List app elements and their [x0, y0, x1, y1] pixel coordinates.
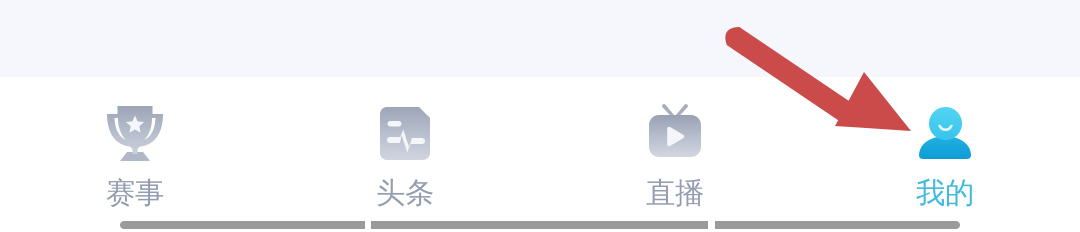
staticText: 赛事	[106, 175, 164, 211]
staticText: 直播	[646, 175, 704, 211]
button[interactable]: 我的	[810, 77, 1080, 232]
button[interactable]: 直播	[540, 77, 810, 232]
button[interactable]: 头条	[270, 77, 540, 232]
button[interactable]: 赛事	[0, 77, 270, 232]
staticText: 头条	[376, 175, 434, 211]
staticText: 我的	[916, 175, 974, 211]
